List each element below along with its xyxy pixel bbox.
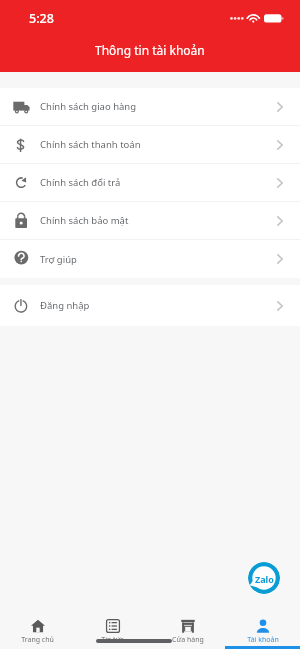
staticText: Chính sách giao hàng [40, 100, 137, 113]
staticText: Chính sách bảo mật [40, 214, 129, 227]
staticText: Tin tức [101, 635, 124, 645]
staticText: Trang chủ [21, 635, 54, 645]
staticText: Zalo [255, 573, 274, 585]
button[interactable]: Chính sách bảo mật [0, 202, 300, 240]
button[interactable]: Trợ giúp [0, 240, 300, 278]
staticText: Thông tin tài khoản [95, 42, 205, 58]
staticText: Cửa hàng [172, 635, 204, 645]
button[interactable]: Trang chủ [0, 605, 75, 649]
button[interactable]: Chat Zalo [248, 562, 280, 594]
button[interactable]: Tin tức [75, 605, 150, 649]
button[interactable]: Đăng nhập [0, 285, 300, 326]
button[interactable]: Chính sách đổi trả [0, 164, 300, 202]
button[interactable]: Chính sách thanh toán [0, 126, 300, 164]
staticText: Trợ giúp [40, 253, 77, 266]
staticText: 5:28 [29, 10, 54, 27]
staticText: Chính sách đổi trả [40, 176, 121, 189]
button[interactable]: Tài khoản [225, 605, 300, 649]
staticText: Đăng nhập [40, 299, 90, 312]
button[interactable]: Chính sách giao hàng [0, 88, 300, 126]
staticText: Chính sách thanh toán [40, 138, 141, 151]
button[interactable]: Cửa hàng [150, 605, 225, 649]
staticText: Tài khoản [247, 635, 279, 645]
